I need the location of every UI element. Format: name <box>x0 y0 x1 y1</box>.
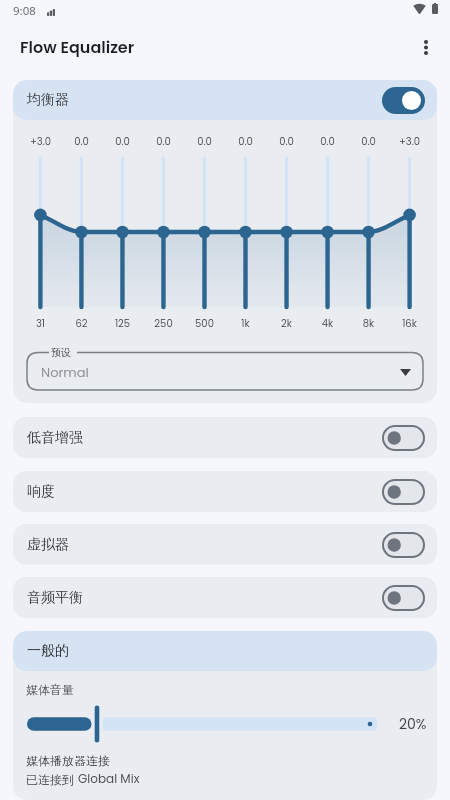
staticText: Flow Equalizer <box>20 36 135 58</box>
staticText: Normal <box>41 363 89 381</box>
staticText: 9:08 <box>13 3 36 19</box>
staticText: +3.0 <box>389 134 430 148</box>
staticText: 500 <box>184 316 225 330</box>
button[interactable]: 虚拟器 <box>13 524 437 565</box>
staticText: 媒体音量 <box>26 682 74 697</box>
staticText: 2k <box>266 316 307 330</box>
staticText: 31 <box>20 316 61 330</box>
staticText: 0.0 <box>61 134 102 148</box>
staticText: 0.0 <box>266 134 307 148</box>
button[interactable]: 一般的 <box>13 631 437 671</box>
staticText: 0.0 <box>102 134 143 148</box>
staticText: 20% <box>399 714 427 734</box>
staticText: 音频平衡 <box>27 589 83 607</box>
staticText: 8k <box>348 316 389 330</box>
staticText: 低音增强 <box>27 429 83 447</box>
staticText: 125 <box>102 316 143 330</box>
button[interactable]: More options <box>408 29 444 65</box>
button[interactable]: 预设 <box>27 352 423 390</box>
staticText: 预设 <box>51 346 71 359</box>
button[interactable]: 低音增强 <box>13 417 437 458</box>
staticText: 虚拟器 <box>27 536 69 554</box>
staticText: +3.0 <box>20 134 61 148</box>
button[interactable] <box>27 704 377 744</box>
staticText: Global Mix <box>78 770 140 787</box>
staticText: 4k <box>307 316 348 330</box>
staticText: 已连接到 <box>26 771 78 787</box>
staticText: 0.0 <box>225 134 266 148</box>
staticText: 1k <box>225 316 266 330</box>
staticText: 媒体播放器连接 <box>26 753 110 768</box>
staticText: 0.0 <box>143 134 184 148</box>
button[interactable]: 均衡器 <box>13 80 437 120</box>
staticText: 0.0 <box>184 134 225 148</box>
staticText: 250 <box>143 316 184 330</box>
staticText: 62 <box>61 316 102 330</box>
staticText: 均衡器 <box>27 91 69 109</box>
staticText: 0.0 <box>348 134 389 148</box>
staticText: 响度 <box>27 483 55 501</box>
button[interactable]: 响度 <box>13 471 437 512</box>
staticText: 一般的 <box>27 642 69 660</box>
staticText: 16k <box>389 316 430 330</box>
button[interactable]: 音频平衡 <box>13 577 437 618</box>
staticText: 0.0 <box>307 134 348 148</box>
